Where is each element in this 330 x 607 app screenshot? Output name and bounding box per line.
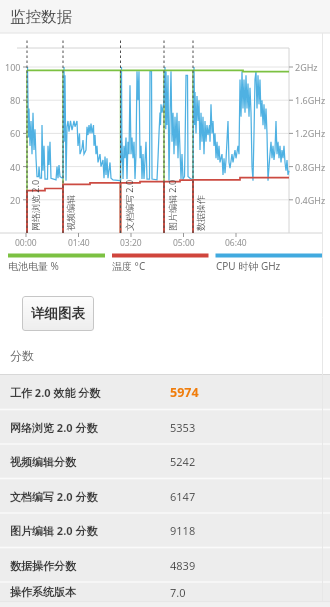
staticText: 文档编写 2.0 分数 [10, 489, 98, 504]
button[interactable]: 网络浏览 2.0 分数 [0, 410, 330, 445]
staticText: CPU 时钟 GHz [216, 259, 281, 272]
staticText: 图片编辑 2.0 分数 [10, 523, 98, 538]
staticText: 分数 [10, 348, 34, 363]
staticText: 05:00 [173, 237, 195, 248]
button[interactable]: 文档编写 2.0 分数 [0, 479, 330, 514]
button[interactable]: 数据操作分数 [0, 548, 330, 583]
staticText: 20 [10, 194, 21, 206]
button[interactable]: 详细图表 [22, 296, 94, 331]
staticText: 06:40 [225, 237, 247, 248]
button[interactable]: 工作 2.0 效能 分数 [0, 375, 330, 410]
staticText: 1.6GHz [295, 94, 326, 106]
staticText: 电池电量 % [8, 259, 59, 272]
staticText: 网络浏览 2.0 [29, 179, 41, 231]
staticText: 60 [10, 127, 21, 139]
staticText: 40 [10, 161, 21, 173]
staticText: 视频编辑分数 [10, 455, 76, 469]
staticText: 5242 [170, 454, 196, 469]
staticText: 温度 °C [112, 259, 146, 272]
staticText: 网络浏览 2.0 分数 [10, 420, 98, 435]
button[interactable]: 操作系统版本 [0, 582, 330, 602]
button[interactable]: 图片编辑 2.0 分数 [0, 513, 330, 548]
staticText: 7.0 [170, 585, 186, 600]
staticText: 5974 [170, 384, 199, 401]
staticText: 0.8GHz [295, 161, 326, 173]
staticText: 监控数据 [10, 7, 72, 27]
button[interactable]: 视频编辑分数 [0, 444, 330, 479]
staticText: 图片编辑 2.0 [166, 179, 178, 231]
staticText: 9118 [170, 523, 196, 538]
staticText: 01:40 [68, 237, 90, 248]
staticText: 100 [5, 61, 21, 73]
staticText: 2GHz [295, 61, 318, 73]
staticText: 4839 [170, 558, 196, 573]
staticText: 6147 [170, 489, 196, 504]
staticText: 5353 [170, 420, 196, 435]
staticText: 操作系统版本 [10, 585, 76, 599]
staticText: 80 [10, 94, 21, 106]
staticText: 0.4GHz [295, 194, 326, 206]
staticText: 03:20 [120, 237, 142, 248]
staticText: 详细图表 [31, 305, 85, 322]
staticText: 1.2GHz [295, 127, 326, 139]
staticText: 文档编写 2.0 [123, 179, 135, 231]
staticText: 数据操作 [195, 195, 206, 231]
staticText: 00:00 [15, 237, 37, 248]
staticText: 工作 2.0 效能 分数 [10, 385, 101, 400]
staticText: 数据操作分数 [10, 559, 76, 573]
staticText: 视频编辑 [65, 195, 76, 231]
